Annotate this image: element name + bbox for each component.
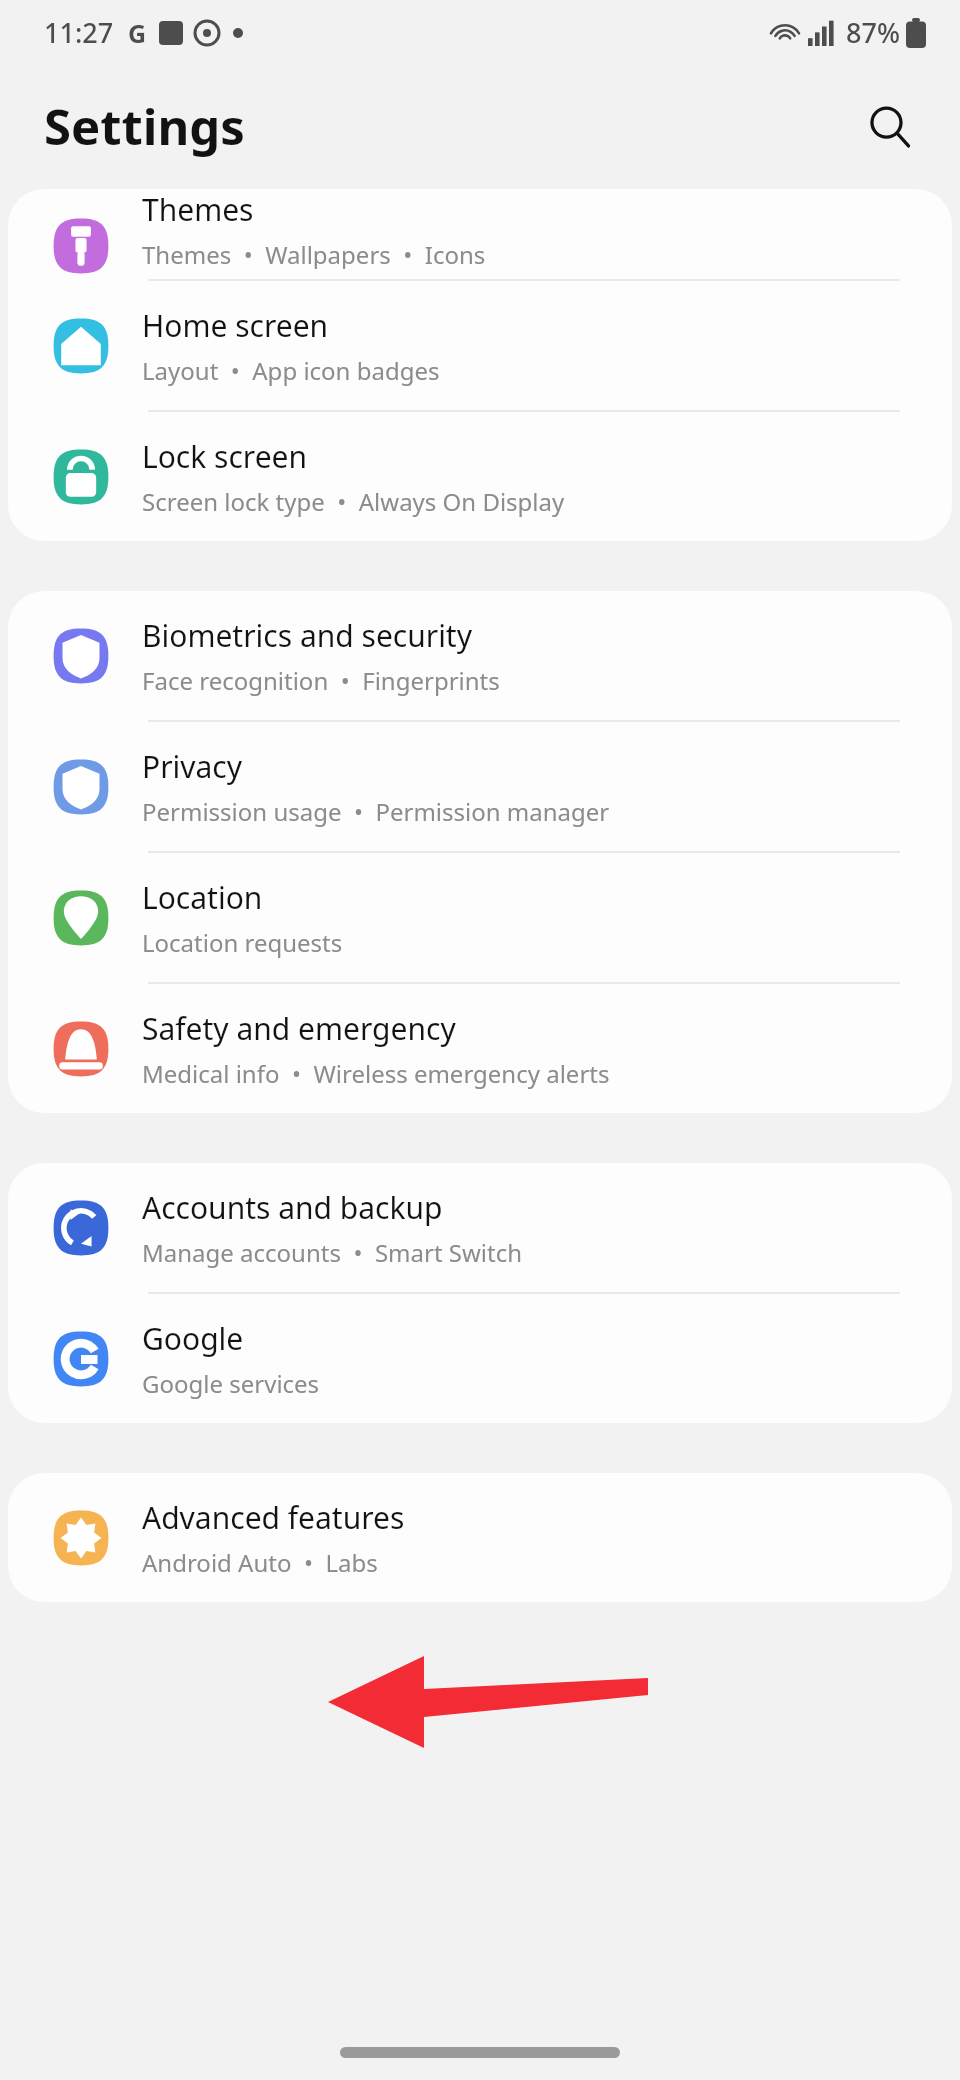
staticText: Lock screen — [142, 436, 308, 477]
staticText: Screen lock type • Always On Display — [142, 485, 565, 518]
staticText: Android Auto • Labs — [142, 1546, 378, 1579]
staticText: Face recognition • Fingerprints — [142, 664, 500, 697]
button[interactable]: Advanced features — [8, 1473, 952, 1602]
button[interactable]: Themes — [8, 189, 952, 279]
button[interactable]: Google — [8, 1294, 952, 1423]
staticText: 11:27 — [44, 14, 114, 51]
staticText: Home screen — [142, 305, 329, 346]
staticText: Google services — [142, 1367, 320, 1400]
button[interactable]: Safety and emergency — [8, 984, 952, 1113]
staticText: G — [128, 16, 147, 50]
button[interactable]: Accounts and backup — [8, 1163, 952, 1292]
button[interactable]: Biometrics and security — [8, 591, 952, 720]
button[interactable]: Search — [854, 91, 926, 163]
button[interactable]: Lock screen — [8, 412, 952, 541]
staticText: Google — [142, 1318, 244, 1359]
staticText: Privacy — [142, 746, 243, 787]
staticText: Themes • Wallpapers • Icons — [142, 238, 486, 269]
button[interactable]: Home screen — [8, 281, 952, 410]
staticText: Layout • App icon badges — [142, 354, 440, 387]
staticText: Location — [142, 877, 263, 918]
button[interactable]: Location — [8, 853, 952, 982]
staticText: Manage accounts • Smart Switch — [142, 1236, 523, 1269]
staticText: Themes — [142, 189, 254, 230]
staticText: 87% — [846, 14, 900, 51]
staticText: Medical info • Wireless emergency alerts — [142, 1057, 610, 1090]
staticText: Settings — [44, 93, 245, 160]
staticText: Permission usage • Permission manager — [142, 795, 610, 828]
staticText: Accounts and backup — [142, 1187, 443, 1228]
staticText: Biometrics and security — [142, 615, 472, 656]
staticText: Location requests — [142, 926, 343, 959]
button[interactable]: Privacy — [8, 722, 952, 851]
staticText: Safety and emergency — [142, 1008, 456, 1049]
staticText: Advanced features — [142, 1497, 405, 1538]
